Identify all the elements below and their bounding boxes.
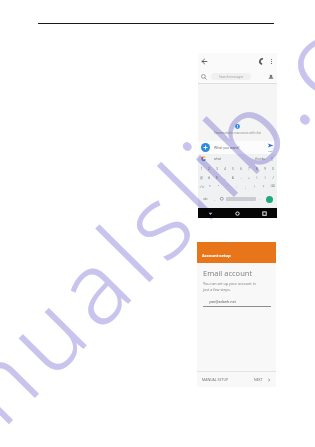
button[interactable]: Search: [201, 74, 207, 80]
button[interactable]: &: [229, 175, 237, 179]
button[interactable]: abc: [200, 197, 211, 201]
button[interactable]: +: [245, 175, 253, 179]
button[interactable]: Back: [208, 211, 213, 216]
button[interactable]: 7: [245, 166, 253, 170]
button[interactable]: Recents: [262, 211, 267, 216]
button[interactable]: 5: [229, 166, 237, 170]
button[interactable]: 9: [261, 166, 269, 170]
staticText: Account setup: [202, 253, 231, 259]
button[interactable]: /: [269, 175, 277, 179]
button[interactable]: 8: [253, 166, 261, 170]
staticText: SMS: [268, 150, 273, 153]
button[interactable]: ": [214, 184, 223, 188]
button[interactable]: Account: [268, 74, 274, 80]
staticText: NEXT: [254, 377, 263, 382]
staticText: thanks: [255, 157, 265, 161]
button[interactable]: 1: [198, 166, 205, 170]
button[interactable]: !: [250, 184, 259, 188]
staticText: yan@adanh.net: [209, 299, 236, 304]
button[interactable]: 3: [213, 166, 221, 170]
button[interactable]: -: [237, 175, 245, 179]
button[interactable]: Emoji: [218, 197, 225, 201]
button[interactable]: @: [198, 175, 205, 179]
button[interactable]: .: [257, 197, 264, 201]
button[interactable]: *: [206, 184, 214, 188]
button[interactable]: =\<: [198, 184, 206, 188]
button[interactable]: (: [253, 175, 261, 179]
button[interactable]: Enter: [266, 196, 273, 203]
button[interactable]: ?: [259, 184, 268, 188]
button[interactable]: :: [232, 184, 241, 188]
button[interactable]: ,: [211, 197, 218, 201]
button[interactable]: ;: [241, 184, 250, 188]
button[interactable]: MANUAL SETUP: [202, 377, 229, 382]
button[interactable]: Search messages: [211, 73, 251, 80]
button[interactable]: ': [223, 184, 232, 188]
staticText: Email account: [203, 268, 253, 278]
button[interactable]: #: [205, 175, 213, 179]
button[interactable]: ): [261, 175, 269, 179]
button[interactable]: 0: [269, 166, 277, 170]
button[interactable]: NEXT: [254, 377, 271, 382]
button[interactable]: 4: [221, 166, 229, 170]
button[interactable]: ⌫: [268, 184, 277, 188]
button[interactable]: $: [213, 175, 221, 179]
staticText: What you want?: [214, 145, 240, 150]
staticText: Search messages: [219, 75, 244, 79]
button[interactable]: Home: [235, 211, 240, 216]
button[interactable]: _: [221, 175, 229, 179]
button[interactable]: Back: [201, 58, 208, 65]
button[interactable]: Call: [259, 58, 266, 65]
button[interactable]: Send SMS: [267, 143, 274, 153]
button[interactable]: More options: [268, 58, 275, 65]
button[interactable]: 2: [205, 166, 213, 170]
staticText: Conversation is now secure with chat: [214, 131, 261, 135]
staticText: You can set up your account in just a fe…: [203, 281, 256, 292]
button[interactable]: Add attachment: [201, 143, 210, 152]
staticText: what: [214, 157, 222, 161]
button[interactable]: 6: [237, 166, 245, 170]
